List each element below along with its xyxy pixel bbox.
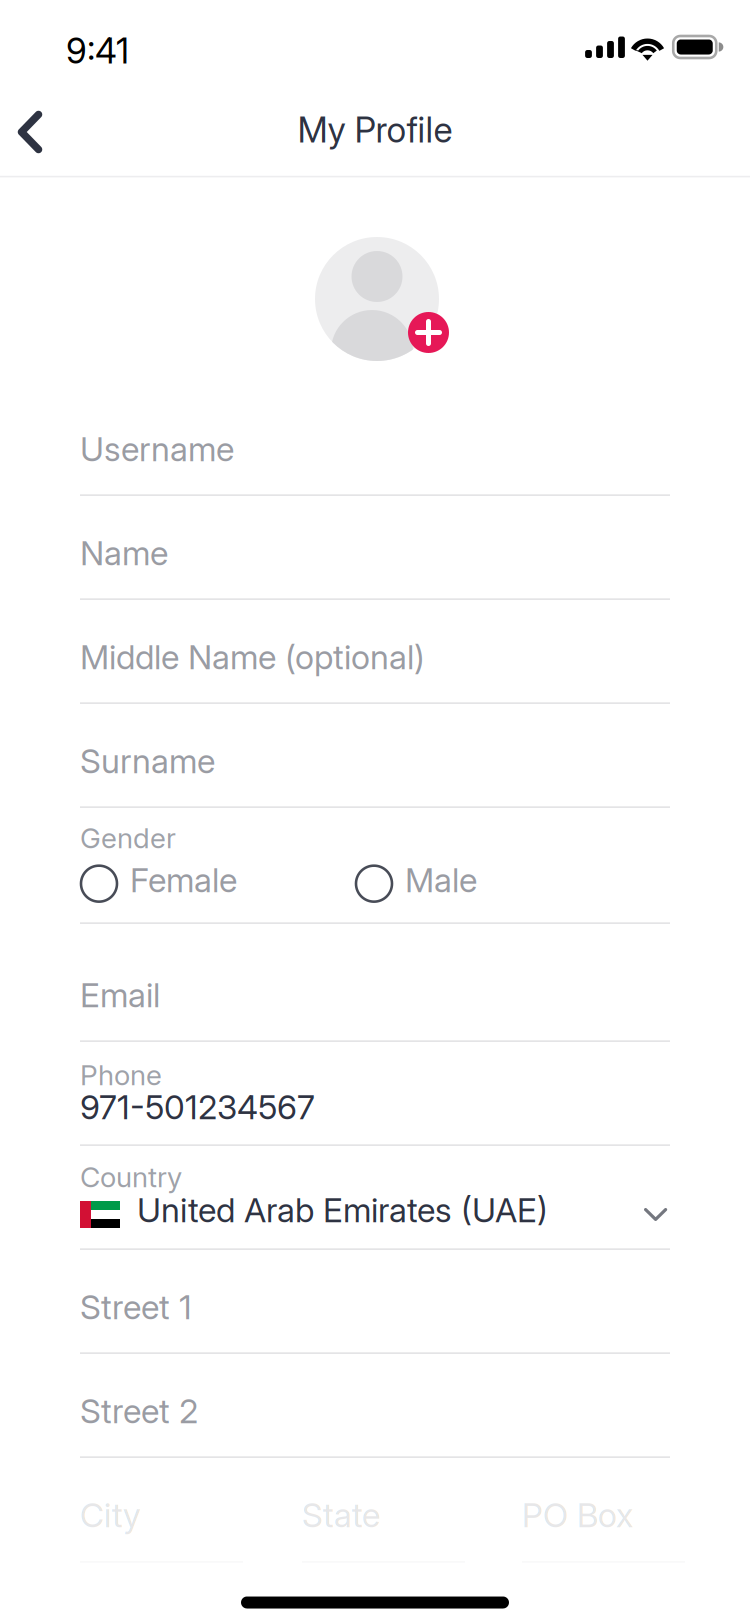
button[interactable]: Middle Name (optional) xyxy=(80,600,670,704)
staticText: Middle Name (optional) xyxy=(80,637,425,677)
staticText: 971-501234567 xyxy=(80,1087,315,1127)
staticText: My Profile xyxy=(297,109,452,151)
staticText: Name xyxy=(80,533,168,573)
button[interactable]: Street 2 xyxy=(80,1354,670,1458)
staticText: Username xyxy=(80,429,234,469)
staticText: Street 1 xyxy=(80,1287,192,1327)
button[interactable]: City xyxy=(80,1495,243,1565)
button[interactable]: Phone xyxy=(80,1042,670,1146)
button[interactable]: Surname xyxy=(80,704,670,808)
staticText: Phone xyxy=(80,1058,162,1092)
button[interactable]: Male xyxy=(355,860,477,900)
staticText: Female xyxy=(130,860,237,900)
staticText: State xyxy=(302,1495,380,1535)
staticText: Street 2 xyxy=(80,1391,198,1431)
button[interactable]: State xyxy=(302,1495,465,1565)
staticText: United Arab Emirates (UAE) xyxy=(137,1190,548,1230)
staticText: Male xyxy=(405,860,477,900)
staticText: PO Box xyxy=(522,1495,633,1535)
staticText: Surname xyxy=(80,741,215,781)
staticText: 9:41 xyxy=(66,30,129,72)
staticText: Gender xyxy=(80,821,176,855)
button[interactable]: Username xyxy=(80,392,670,496)
button[interactable]: Female xyxy=(80,860,237,900)
button[interactable]: Change profile photo xyxy=(315,237,452,361)
staticText: Country xyxy=(80,1160,182,1194)
button[interactable]: Street 1 xyxy=(80,1250,670,1354)
button[interactable]: Country xyxy=(80,1146,670,1250)
staticText: Email xyxy=(80,975,160,1015)
button[interactable]: PO Box xyxy=(522,1495,685,1565)
button[interactable]: Email xyxy=(80,924,670,1042)
button[interactable]: Name xyxy=(80,496,670,600)
button[interactable]: Back xyxy=(0,88,60,176)
staticText: City xyxy=(80,1495,141,1535)
